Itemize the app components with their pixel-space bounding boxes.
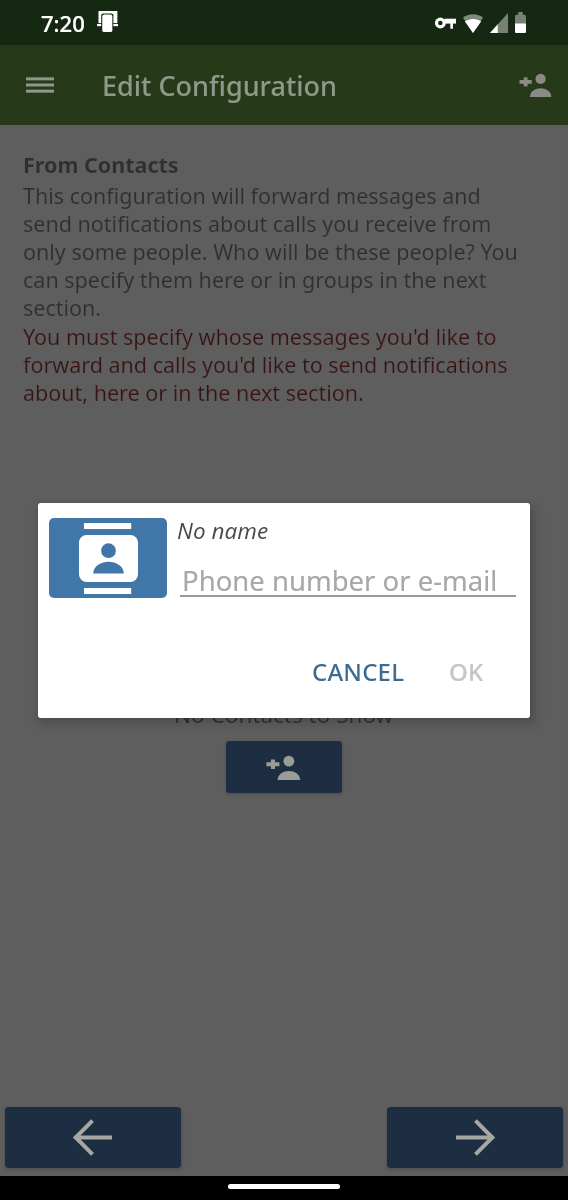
button[interactable]: Next: [387, 1107, 563, 1168]
button[interactable]: CANCEL: [298, 646, 431, 697]
button[interactable]: Back: [5, 1107, 181, 1168]
staticText: CANCEL: [312, 655, 405, 688]
staticText: No Contacts to Show: [174, 699, 394, 730]
staticText: Phone number or e-mail: [182, 562, 498, 599]
staticText: No name: [177, 515, 269, 546]
staticText: You must specify whose messages you'd li…: [23, 322, 530, 407]
staticText: Edit Configuration: [102, 67, 337, 104]
staticText: OK: [449, 655, 484, 688]
staticText: From Contacts: [23, 150, 179, 179]
button[interactable]: Add contact: [226, 741, 342, 793]
staticText: This configuration will forward messages…: [23, 181, 530, 322]
button[interactable]: Add contact: [510, 59, 562, 111]
button[interactable]: OK: [431, 646, 505, 697]
button[interactable]: Menu: [12, 57, 68, 113]
staticText: 7:20: [41, 8, 85, 38]
